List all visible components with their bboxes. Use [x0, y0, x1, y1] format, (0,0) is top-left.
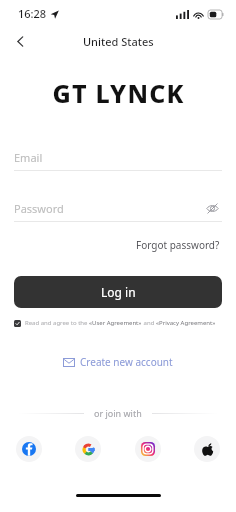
button[interactable]: Forgot password? — [134, 236, 222, 254]
button[interactable]: Read and agree to the — [14, 319, 222, 327]
button[interactable]: Sign in with Instagram — [135, 436, 161, 462]
button[interactable]: Show password — [202, 198, 222, 218]
button[interactable]: Log in — [14, 276, 222, 308]
staticText: Email — [14, 150, 43, 165]
button[interactable]: Password — [14, 195, 222, 221]
staticText: or join with — [94, 407, 142, 419]
staticText: United States — [83, 34, 154, 49]
staticText: «User Agreement» — [89, 319, 142, 327]
button[interactable]: Email — [14, 144, 222, 170]
staticText: Forgot password? — [136, 238, 220, 252]
button[interactable]: Back — [8, 29, 32, 53]
button[interactable]: Sign in with Apple — [194, 436, 220, 462]
staticText: Log in — [101, 284, 136, 300]
staticText: Read and agree to the — [25, 319, 89, 327]
staticText: «Privacy Agreement» — [156, 319, 216, 327]
staticText: GT LYNCK — [52, 76, 185, 110]
staticText: Create new account — [80, 355, 173, 369]
button[interactable]: Create new account — [59, 352, 177, 372]
button[interactable]: Sign in with Facebook — [16, 436, 42, 462]
staticText: and — [142, 319, 156, 327]
staticText: 16:28 — [18, 6, 47, 21]
button[interactable]: Sign in with Google — [75, 436, 101, 462]
staticText: Password — [14, 201, 64, 216]
